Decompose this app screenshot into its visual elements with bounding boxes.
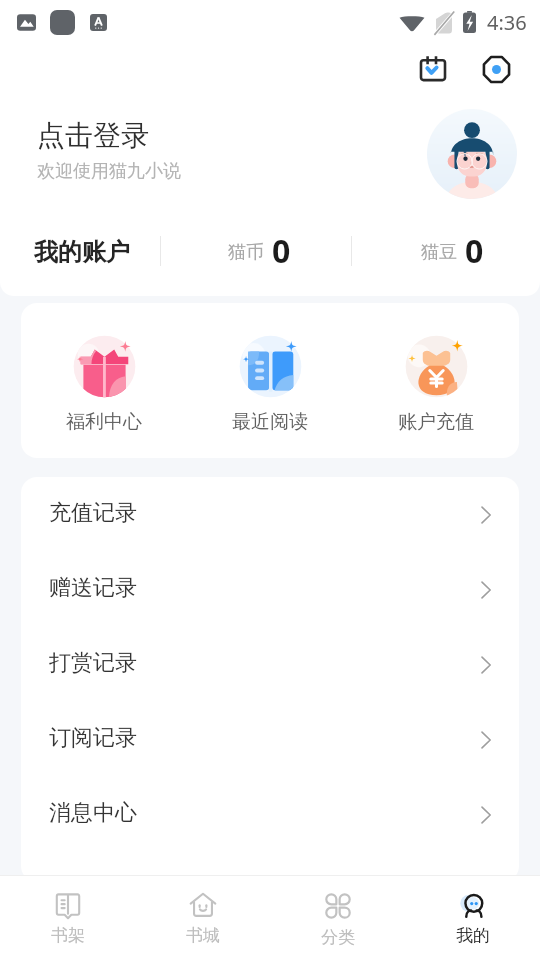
button[interactable]: 福利中心: [21, 303, 187, 458]
staticText: 消息中心: [49, 799, 137, 827]
button[interactable]: 书架: [0, 876, 135, 960]
button[interactable]: Sign in calendar: [411, 47, 455, 91]
staticText: 猫豆: [421, 241, 457, 264]
staticText: 点击登录: [37, 118, 149, 153]
button[interactable]: 分类: [270, 876, 405, 960]
button[interactable]: 消息中心: [21, 777, 519, 852]
staticText: 福利中心: [66, 410, 142, 434]
button[interactable]: 我的: [405, 876, 540, 960]
staticText: 0: [465, 229, 484, 273]
staticText: 最近阅读: [232, 410, 308, 434]
staticText: 书架: [51, 925, 85, 946]
button[interactable]: 我的账户: [34, 237, 130, 267]
staticText: 打赏记录: [49, 649, 137, 677]
staticText: 赠送记录: [49, 574, 137, 602]
button[interactable]: Settings: [474, 47, 518, 91]
staticText: 分类: [321, 927, 355, 948]
staticText: 4:36: [487, 9, 527, 36]
staticText: 账户充值: [398, 410, 474, 434]
staticText: 猫币: [228, 241, 264, 264]
button[interactable]: 最近阅读: [187, 303, 353, 458]
staticText: 我的账户: [34, 237, 130, 267]
button[interactable]: 打赏记录: [21, 627, 519, 702]
button[interactable]: 点击登录: [37, 118, 181, 183]
button[interactable]: 书城: [135, 876, 270, 960]
staticText: 0: [272, 229, 291, 273]
button[interactable]: 赠送记录: [21, 552, 519, 627]
button[interactable]: 猫豆: [421, 229, 484, 273]
button[interactable]: 账户充值: [353, 303, 519, 458]
staticText: 书城: [186, 925, 220, 946]
staticText: 订阅记录: [49, 724, 137, 752]
staticText: 充值记录: [49, 499, 137, 527]
button[interactable]: 充值记录: [21, 477, 519, 552]
button[interactable]: Avatar: [427, 109, 517, 199]
staticText: 欢迎使用猫九小说: [37, 160, 181, 183]
button[interactable]: 订阅记录: [21, 702, 519, 777]
button[interactable]: 猫币: [228, 229, 291, 273]
staticText: 我的: [456, 925, 490, 946]
